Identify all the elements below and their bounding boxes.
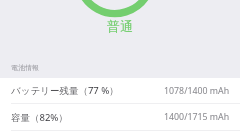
button[interactable]: Battery level 77 percent, 1078 of 1400 m… bbox=[0, 78, 240, 103]
staticText: 1400/1715 mAh bbox=[164, 111, 230, 123]
button[interactable]: Capacity 82 percent, 1400 of 1715 mAh bbox=[0, 104, 240, 130]
staticText: 電池情報 bbox=[11, 63, 39, 72]
staticText: 容量（82%） bbox=[11, 111, 68, 124]
staticText: 1078/1400 mAh bbox=[164, 85, 230, 97]
staticText: 普通 bbox=[107, 18, 133, 34]
staticText: バッテリー残量（77 %） bbox=[11, 84, 119, 97]
